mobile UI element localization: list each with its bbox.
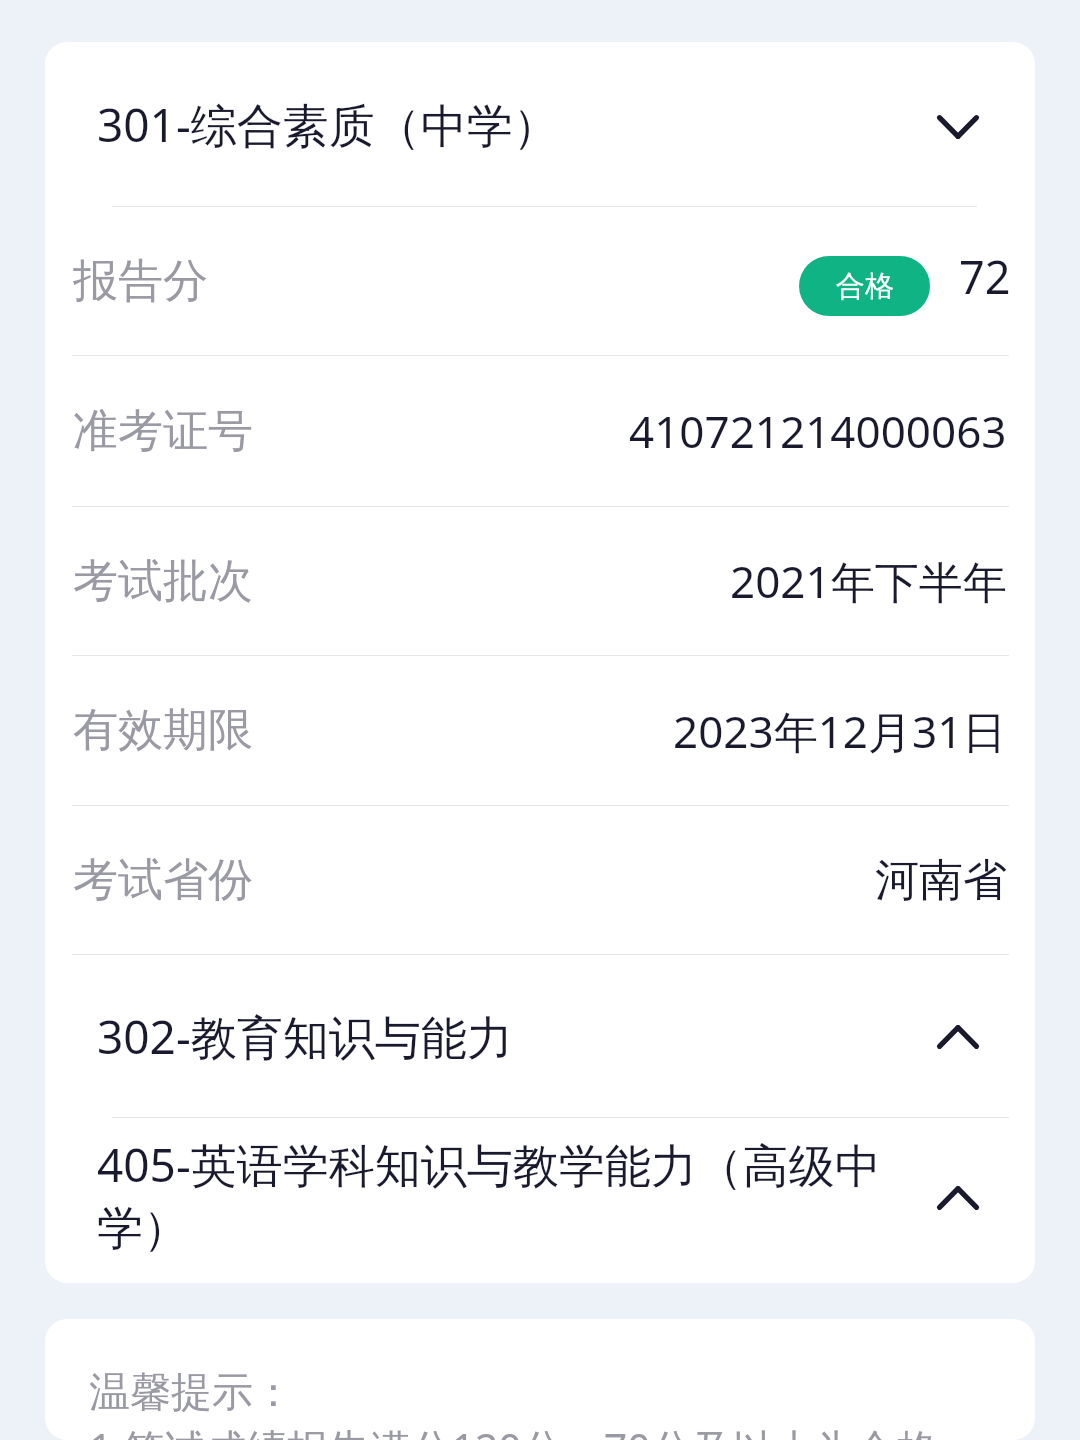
button[interactable]: Collapse 301 综合素质（中学） <box>908 77 1007 177</box>
staticText: 有效期限 <box>73 702 253 759</box>
button[interactable]: 考试省份 <box>45 806 1035 954</box>
button[interactable]: 合格 <box>799 256 930 316</box>
staticText: 302-教育知识与能力 <box>97 1005 908 1068</box>
staticText: 2021年下半年 <box>730 551 1007 611</box>
staticText: 72 <box>959 246 1011 307</box>
staticText: 温馨提示： <box>89 1367 294 1419</box>
button[interactable]: 405-英语学科知识与教学能力（高级中学） <box>45 1118 1035 1283</box>
staticText: 405-英语学科知识与教学能力（高级中学） <box>97 1133 908 1257</box>
staticText: 1.笔试成绩报告满分120分，70分及以上为合格 <box>89 1420 938 1440</box>
button[interactable]: 301-综合素质（中学） <box>45 42 1035 206</box>
staticText: 报告分 <box>73 253 208 310</box>
staticText: 考试批次 <box>73 553 253 610</box>
button[interactable]: 302-教育知识与能力 <box>45 955 1035 1117</box>
staticText: 河南省 <box>875 853 1007 908</box>
button[interactable]: 准考证号 <box>45 356 1035 506</box>
staticText: 考试省份 <box>73 852 253 909</box>
staticText: 2023年12月31日 <box>673 701 1007 761</box>
button[interactable]: 有效期限 <box>45 656 1035 805</box>
staticText: 合格 <box>836 268 894 305</box>
button[interactable]: Expand 302 教育知识与能力 <box>908 987 1007 1087</box>
button[interactable]: 报告分 <box>45 207 1035 355</box>
button[interactable]: Expand 405 英语学科知识与教学能力（高级中学） <box>908 1148 1007 1248</box>
staticText: 准考证号 <box>73 403 253 460</box>
staticText: 410721214000063 <box>629 401 1007 461</box>
button[interactable]: 考试批次 <box>45 507 1035 655</box>
staticText: 301-综合素质（中学） <box>97 93 908 156</box>
